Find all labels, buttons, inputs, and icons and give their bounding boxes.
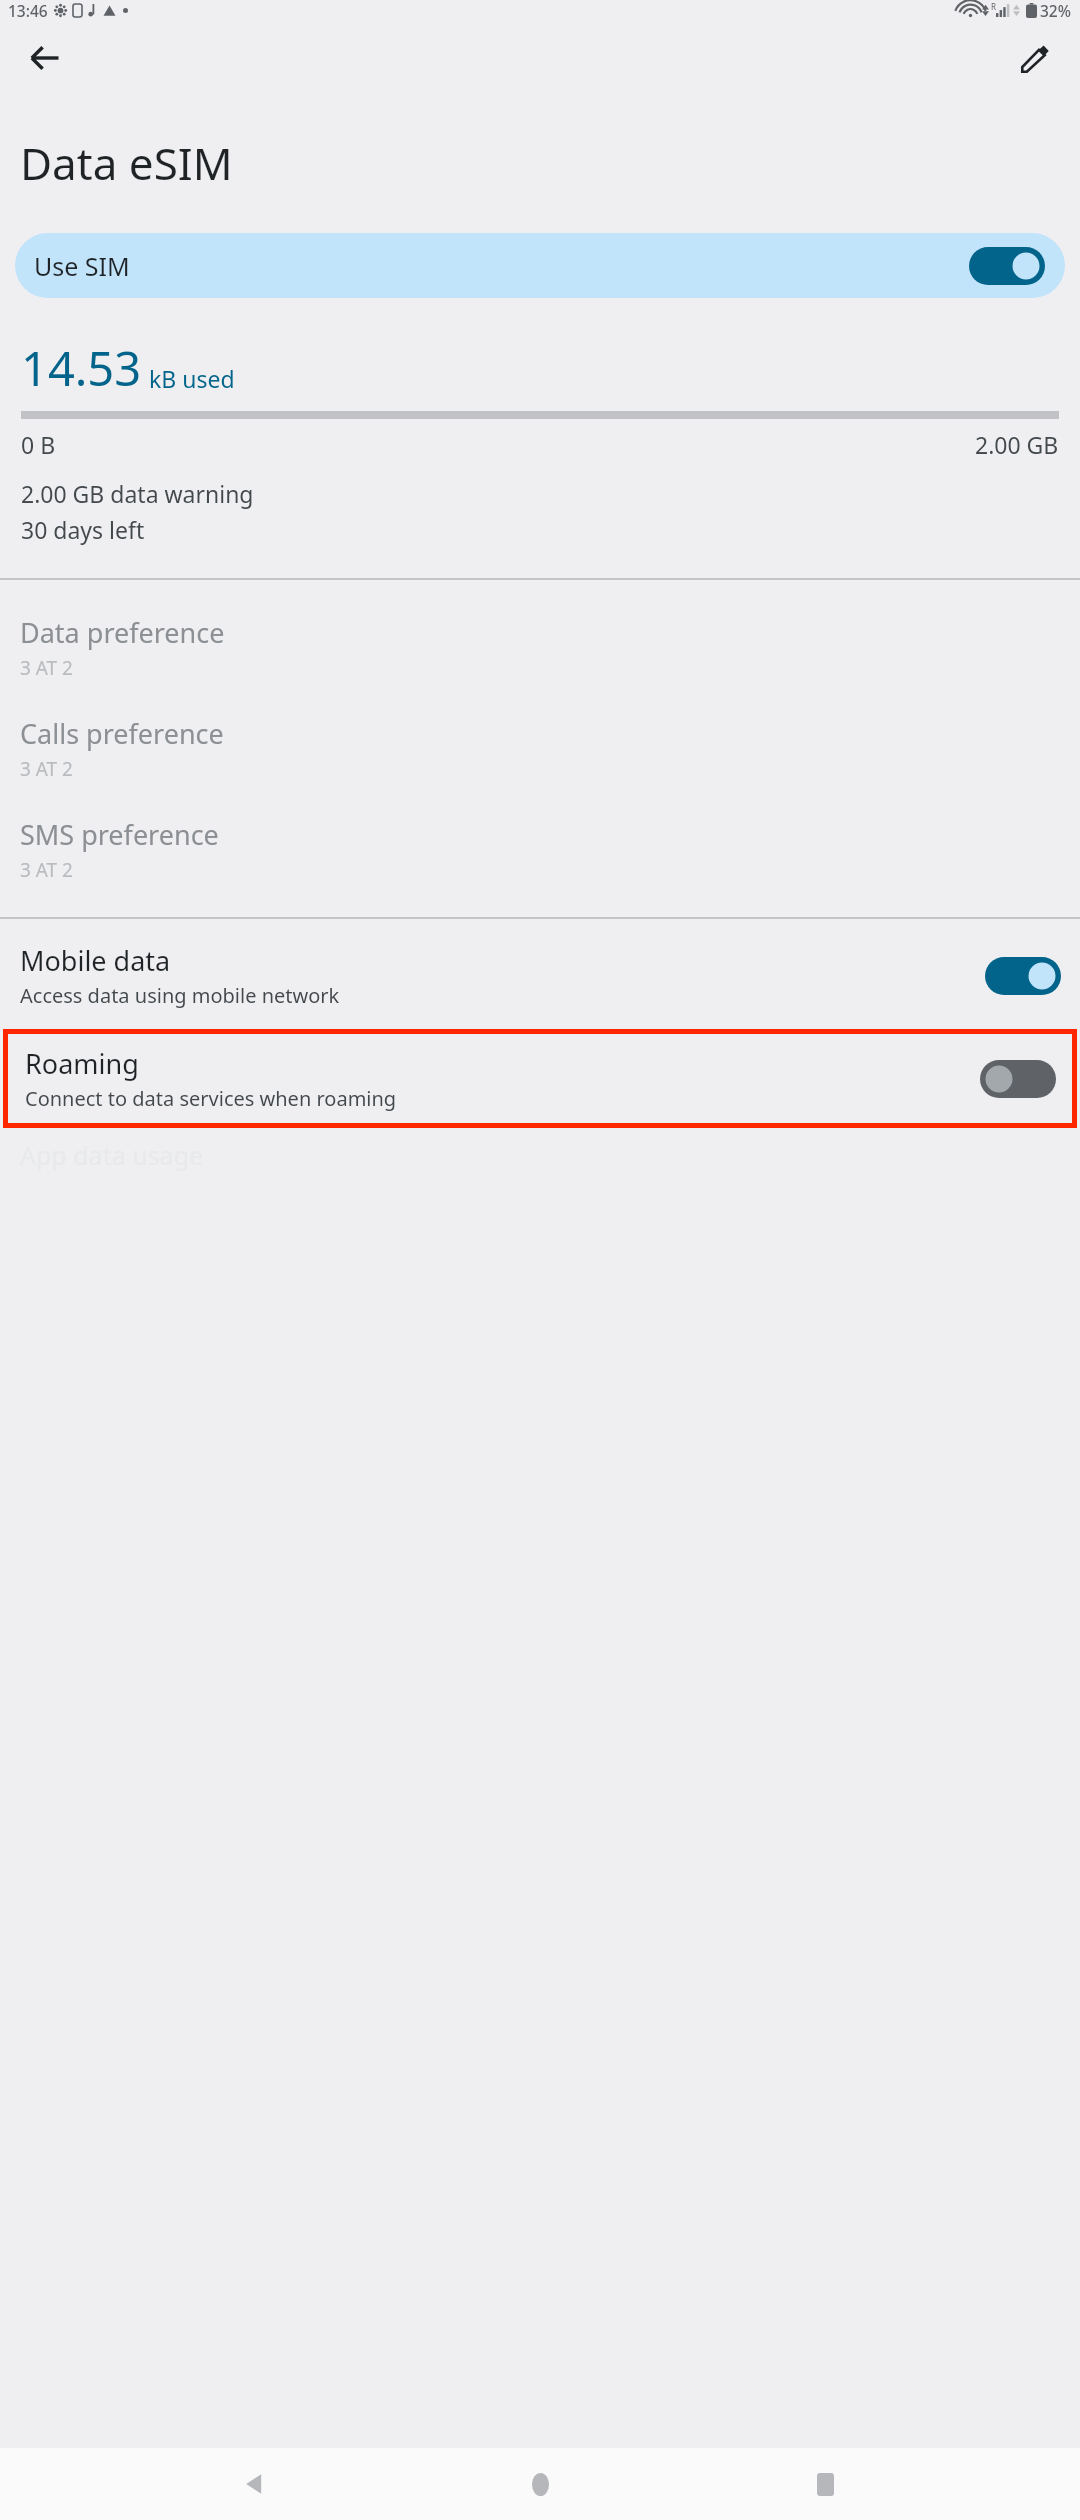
staticText: 32% [1040,0,1071,21]
staticText: 13:46 [8,0,48,21]
staticText: Connect to data services when roaming [25,1085,397,1112]
staticText: Mobile data [20,942,171,979]
button[interactable]: SMS preference [0,812,1080,887]
button[interactable]: Calls preference [0,711,1080,786]
staticText: Data eSIM [20,133,233,193]
staticText: 2.00 GB [975,429,1059,460]
staticText: 3 AT 2 [20,756,73,782]
staticText: 3 AT 2 [20,655,73,681]
staticText: Calls preference [20,715,224,752]
button[interactable]: Data preference [0,610,1080,685]
button[interactable]: Recents [795,2454,855,2514]
button[interactable]: Home [510,2454,570,2514]
button[interactable]: Mobile data [0,932,1080,1019]
staticText: 14.53 [21,336,142,400]
staticText: 0 B [21,429,56,460]
button[interactable]: Back [225,2454,285,2514]
staticText: Access data using mobile network [20,982,340,1009]
button[interactable]: Roaming [8,1034,1072,1123]
button[interactable]: Use SIM [15,233,1065,298]
staticText: Roaming [25,1045,139,1082]
staticText: Use SIM [34,249,969,283]
staticText: 2.00 GB data warning [21,478,254,509]
button[interactable]: Back [14,27,76,89]
staticText: 3 AT 2 [20,857,73,883]
staticText: kB used [149,363,235,394]
staticText: 30 days left [21,514,145,545]
button[interactable]: Edit [1004,27,1066,89]
staticText: SMS preference [20,816,219,853]
staticText: Data preference [20,614,225,651]
staticText: R [991,1,996,12]
